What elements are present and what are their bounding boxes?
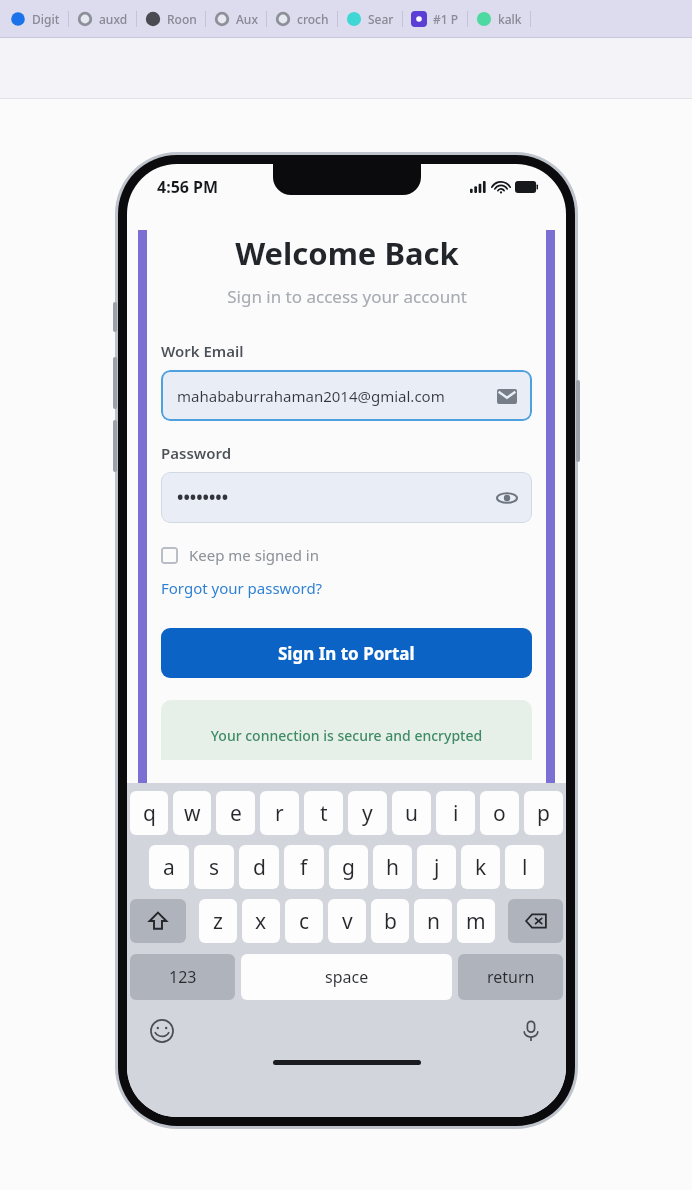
staticText: Your connection is secure and encrypted — [161, 726, 532, 745]
button[interactable]: q — [130, 791, 168, 835]
button[interactable]: Show password — [496, 487, 518, 509]
staticText: b — [384, 907, 397, 936]
staticText: g — [342, 853, 355, 882]
staticText: Sear — [368, 11, 394, 27]
staticText: •••••••• — [177, 486, 229, 509]
staticText: m — [466, 907, 486, 936]
staticText: Keep me signed in — [189, 545, 319, 565]
button[interactable]: c — [285, 899, 323, 943]
staticText: #1 P — [433, 11, 459, 27]
button[interactable]: d — [239, 845, 279, 889]
staticText: mahababurrahaman2014@gmial.com — [177, 386, 445, 406]
staticText: a — [163, 853, 175, 882]
staticText: q — [143, 799, 156, 828]
button[interactable]: o — [480, 791, 519, 835]
button[interactable]: f — [284, 845, 324, 889]
button[interactable]: 123 — [130, 954, 235, 1000]
button[interactable]: mahababurrahaman2014@gmial.com — [161, 370, 532, 421]
staticText: d — [253, 853, 266, 882]
staticText: y — [362, 799, 373, 828]
staticText: h — [386, 853, 399, 882]
button[interactable]: x — [242, 899, 280, 943]
staticText: u — [405, 799, 418, 828]
button[interactable]: Keep me signed in — [161, 545, 532, 565]
staticText: j — [434, 853, 440, 882]
staticText: 123 — [169, 966, 197, 988]
button[interactable]: s — [194, 845, 234, 889]
button[interactable]: Emoji — [147, 1016, 177, 1046]
button[interactable]: j — [417, 845, 456, 889]
button[interactable]: Email — [496, 385, 518, 407]
button[interactable]: return — [458, 954, 563, 1000]
button[interactable]: •••••••• — [161, 472, 532, 523]
button[interactable]: auxd — [69, 11, 136, 27]
staticText: k — [475, 853, 487, 882]
staticText: kalk — [498, 11, 522, 27]
button[interactable]: w — [173, 791, 211, 835]
button[interactable]: z — [199, 899, 237, 943]
staticText: Digit — [32, 11, 60, 27]
button[interactable]: Forgot your password? — [161, 578, 323, 598]
staticText: Work Email — [161, 341, 244, 361]
button[interactable]: r — [260, 791, 299, 835]
button[interactable]: m — [457, 899, 495, 943]
staticText: Roon — [167, 11, 197, 27]
button[interactable]: k — [461, 845, 500, 889]
staticText: return — [487, 966, 535, 988]
staticText: r — [275, 799, 284, 828]
button[interactable]: Roon — [137, 11, 205, 27]
button[interactable]: Sear — [338, 11, 402, 27]
button[interactable]: v — [328, 899, 366, 943]
button[interactable]: #1 P — [403, 11, 467, 27]
staticText: t — [320, 799, 328, 828]
button[interactable]: Backspace — [508, 899, 563, 943]
button[interactable]: croch — [267, 11, 337, 27]
button[interactable]: space — [241, 954, 452, 1000]
button[interactable]: l — [505, 845, 544, 889]
staticText: s — [209, 853, 220, 882]
staticText: space — [325, 966, 369, 988]
staticText: l — [522, 853, 528, 882]
staticText: Sign In to Portal — [278, 642, 415, 665]
button[interactable]: Sign In to Portal — [161, 628, 532, 678]
button[interactable]: a — [149, 845, 189, 889]
staticText: Password — [161, 443, 232, 463]
staticText: e — [230, 799, 242, 828]
button[interactable]: kalk — [468, 11, 530, 27]
button[interactable]: g — [329, 845, 368, 889]
staticText: c — [299, 907, 310, 936]
button[interactable]: b — [371, 899, 409, 943]
button[interactable]: e — [216, 791, 255, 835]
button[interactable]: Aux — [206, 11, 266, 27]
button[interactable]: t — [304, 791, 343, 835]
staticText: z — [213, 907, 223, 936]
staticText: o — [493, 799, 506, 828]
staticText: x — [255, 907, 267, 936]
button[interactable]: Digit — [2, 11, 68, 27]
button[interactable]: u — [392, 791, 431, 835]
staticText: croch — [297, 11, 329, 27]
button[interactable]: p — [524, 791, 563, 835]
button[interactable]: Voice input — [516, 1016, 546, 1046]
staticText: Welcome Back — [235, 232, 459, 274]
button[interactable]: Shift — [130, 899, 186, 943]
staticText: w — [184, 799, 201, 828]
staticText: Sign in to access your account — [227, 285, 467, 308]
button[interactable]: i — [436, 791, 475, 835]
staticText: f — [300, 853, 308, 882]
staticText: auxd — [99, 11, 128, 27]
button[interactable]: y — [348, 791, 387, 835]
staticText: p — [537, 799, 550, 828]
staticText: i — [453, 799, 459, 828]
staticText: v — [342, 907, 353, 936]
staticText: Aux — [236, 11, 258, 27]
button[interactable]: n — [414, 899, 452, 943]
staticText: n — [427, 907, 440, 936]
button[interactable]: h — [373, 845, 412, 889]
staticText: 4:56 PM — [157, 176, 219, 198]
